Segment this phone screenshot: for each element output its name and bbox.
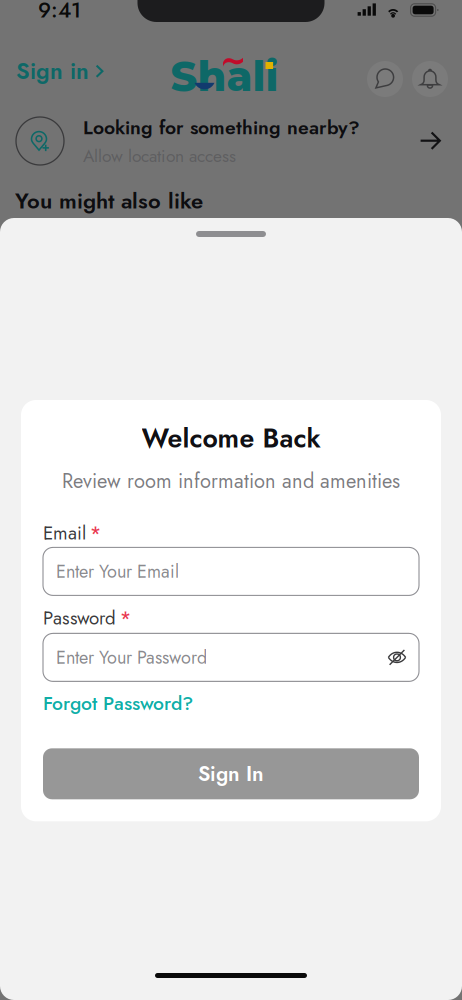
staticText: Email — [43, 519, 86, 546]
button[interactable]: Sign In — [43, 748, 419, 799]
staticText: 9:41 — [38, 0, 81, 25]
staticText: Sign in — [16, 55, 89, 87]
staticText: Enter Your Email — [56, 558, 179, 584]
staticText: * — [90, 519, 101, 546]
button[interactable]: Enter Your Email — [43, 547, 419, 595]
staticText: Forgot Password? — [43, 689, 193, 717]
staticText: Password — [43, 604, 116, 631]
button[interactable]: Messages — [367, 59, 403, 95]
button[interactable]: Sign in — [16, 53, 104, 101]
staticText: You might also like — [15, 185, 203, 217]
staticText: Shali — [170, 51, 278, 101]
staticText: Welcome Back — [141, 419, 320, 457]
button[interactable]: Forgot Password? — [43, 681, 419, 717]
button[interactable]: Notifications — [412, 59, 448, 95]
staticText: Sign In — [198, 759, 264, 789]
staticText: Enter Your Password — [56, 644, 207, 670]
staticText: Allow location access — [83, 143, 236, 168]
button[interactable]: Looking for something nearby? — [0, 110, 462, 172]
staticText: * — [120, 604, 131, 631]
staticText: Looking for something nearby? — [83, 113, 360, 141]
staticText: Review room information and amenities — [62, 466, 400, 495]
button[interactable]: Enter Your Password — [43, 633, 419, 681]
